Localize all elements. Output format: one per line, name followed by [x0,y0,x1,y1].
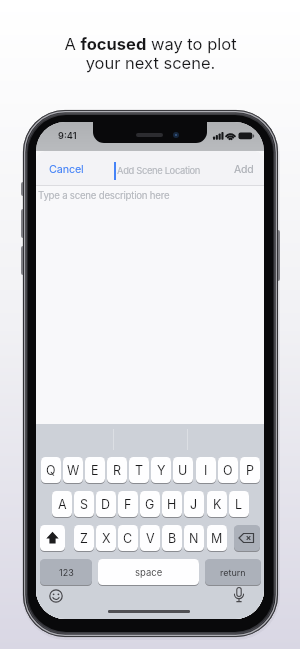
staticText: A focused way to plot your next scene. [64,34,237,73]
button[interactable]: K [207,491,227,517]
staticText: P [246,463,254,478]
button[interactable]: space [98,559,199,585]
button[interactable]: I [196,457,216,483]
staticText: N [189,531,199,546]
staticText: F [124,497,132,512]
button[interactable]: Y [151,457,171,483]
button[interactable]: Z [74,525,94,551]
button[interactable]: F [118,491,138,517]
staticText: Y [157,463,166,478]
button[interactable]: H [162,491,182,517]
staticText: J [190,497,198,512]
staticText: Z [80,531,88,546]
button[interactable]: P [240,457,260,483]
button[interactable]: U [173,457,193,483]
staticText: 9:41 [58,130,77,141]
staticText: X [102,531,111,546]
button[interactable]: X [96,525,116,551]
staticText: S [80,497,89,512]
button[interactable]: D [96,491,116,517]
button[interactable]: A [52,491,72,517]
button[interactable]: J [184,491,204,517]
button[interactable]: 123 [40,559,92,585]
staticText: T [135,463,144,478]
staticText: G [145,497,155,512]
staticText: V [146,531,155,546]
staticText: U [178,463,188,478]
button[interactable]: R [107,457,127,483]
button[interactable]: S [74,491,94,517]
button[interactable]: Q [41,457,61,483]
staticText: I [204,463,208,478]
staticText: 123 [59,567,74,578]
button[interactable] [234,525,260,551]
button[interactable]: O [218,457,238,483]
button[interactable]: C [118,525,138,551]
button[interactable] [230,586,248,606]
button[interactable] [40,525,65,551]
button[interactable]: T [129,457,149,483]
staticText: Type a scene description here [38,190,170,202]
button[interactable]: B [162,525,182,551]
button[interactable]: W [63,457,83,483]
staticText: H [167,497,177,512]
button[interactable]: return [205,559,261,585]
button[interactable]: M [207,525,227,551]
staticText: L [235,497,243,512]
button[interactable] [47,587,65,605]
staticText: Add [234,163,254,176]
staticText: W [67,463,80,478]
staticText: O [223,463,233,478]
staticText: K [213,497,222,512]
staticText: C [123,531,133,546]
button[interactable]: N [184,525,204,551]
staticText: D [101,497,111,512]
staticText: A [58,497,67,512]
button[interactable]: V [140,525,160,551]
button[interactable]: Add [234,163,254,176]
staticText: Add Scene Location [117,165,201,176]
staticText: R [113,463,122,478]
button[interactable]: Cancel [49,163,84,176]
staticText: E [91,463,99,478]
staticText: space [135,567,163,578]
button[interactable]: L [229,491,249,517]
staticText: return [220,567,246,578]
button[interactable]: G [140,491,160,517]
staticText: B [168,531,177,546]
staticText: Q [46,463,56,478]
staticText: Cancel [49,163,84,176]
staticText: M [211,531,223,546]
button[interactable]: E [85,457,105,483]
